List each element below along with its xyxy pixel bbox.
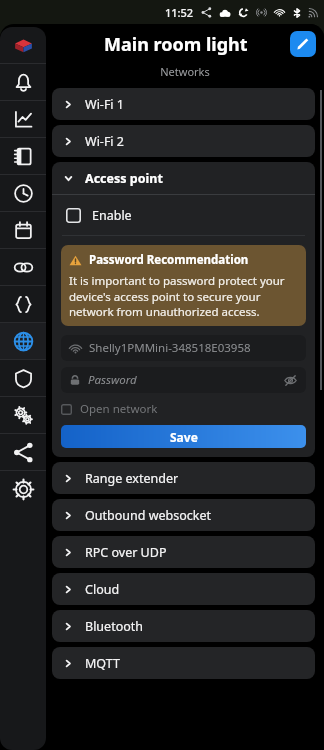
button[interactable]: MQTT bbox=[52, 647, 315, 679]
staticText: Cloud bbox=[85, 581, 120, 598]
button[interactable]: Device bbox=[0, 27, 46, 63]
staticText: Enable bbox=[92, 207, 132, 224]
button[interactable]: Security bbox=[0, 360, 46, 396]
button[interactable]: Shelly1PMMini-348518E03958 bbox=[61, 335, 306, 361]
button[interactable]: Logs bbox=[0, 138, 46, 174]
staticText: It is important to password protect your… bbox=[69, 273, 298, 319]
button[interactable]: Settings bbox=[0, 471, 46, 507]
button[interactable]: Cloud bbox=[52, 573, 315, 605]
button[interactable]: Wi-Fi 1 bbox=[52, 88, 315, 120]
staticText: Password bbox=[88, 372, 283, 388]
button[interactable]: Schedules bbox=[0, 175, 46, 211]
staticText: Open network bbox=[80, 401, 158, 417]
staticText: Wi-Fi 2 bbox=[85, 133, 124, 150]
button[interactable]: Edit bbox=[290, 31, 316, 57]
staticText: RPC over UDP bbox=[85, 544, 167, 561]
staticText: Password Recommendation bbox=[89, 252, 249, 268]
staticText: Networks bbox=[46, 64, 324, 79]
staticText: Save bbox=[170, 429, 198, 445]
button[interactable]: Bluetooth bbox=[52, 610, 315, 642]
button[interactable]: Scripts bbox=[0, 286, 46, 322]
staticText: Range extender bbox=[85, 470, 179, 487]
button[interactable]: RPC over UDP bbox=[52, 536, 315, 568]
button[interactable]: Open network bbox=[61, 400, 306, 418]
staticText: Access point bbox=[85, 170, 163, 187]
button[interactable]: Advanced bbox=[0, 397, 46, 433]
button[interactable]: Statistics bbox=[0, 101, 46, 137]
staticText: Wi-Fi 1 bbox=[85, 96, 124, 113]
button[interactable]: Access point bbox=[52, 162, 315, 194]
button[interactable]: Outbound websocket bbox=[52, 499, 315, 531]
button[interactable]: Networks bbox=[0, 323, 46, 359]
button[interactable]: Share bbox=[0, 434, 46, 470]
staticText: Bluetooth bbox=[85, 618, 144, 635]
button[interactable]: Wi-Fi 2 bbox=[52, 125, 315, 157]
staticText: Main room light bbox=[104, 32, 248, 57]
button[interactable]: Password bbox=[61, 367, 306, 393]
staticText: MQTT bbox=[85, 655, 120, 672]
button[interactable]: Save bbox=[61, 425, 306, 448]
staticText: 11:52 bbox=[165, 5, 194, 20]
button[interactable]: Enable bbox=[52, 195, 315, 235]
button[interactable]: Calendar bbox=[0, 212, 46, 248]
button[interactable]: Show password bbox=[283, 373, 298, 388]
button[interactable]: Links bbox=[0, 249, 46, 285]
staticText: Outbound websocket bbox=[85, 507, 211, 524]
staticText: Shelly1PMMini-348518E03958 bbox=[89, 340, 251, 356]
button[interactable]: Range extender bbox=[52, 462, 315, 494]
button[interactable]: Notifications bbox=[0, 64, 46, 100]
